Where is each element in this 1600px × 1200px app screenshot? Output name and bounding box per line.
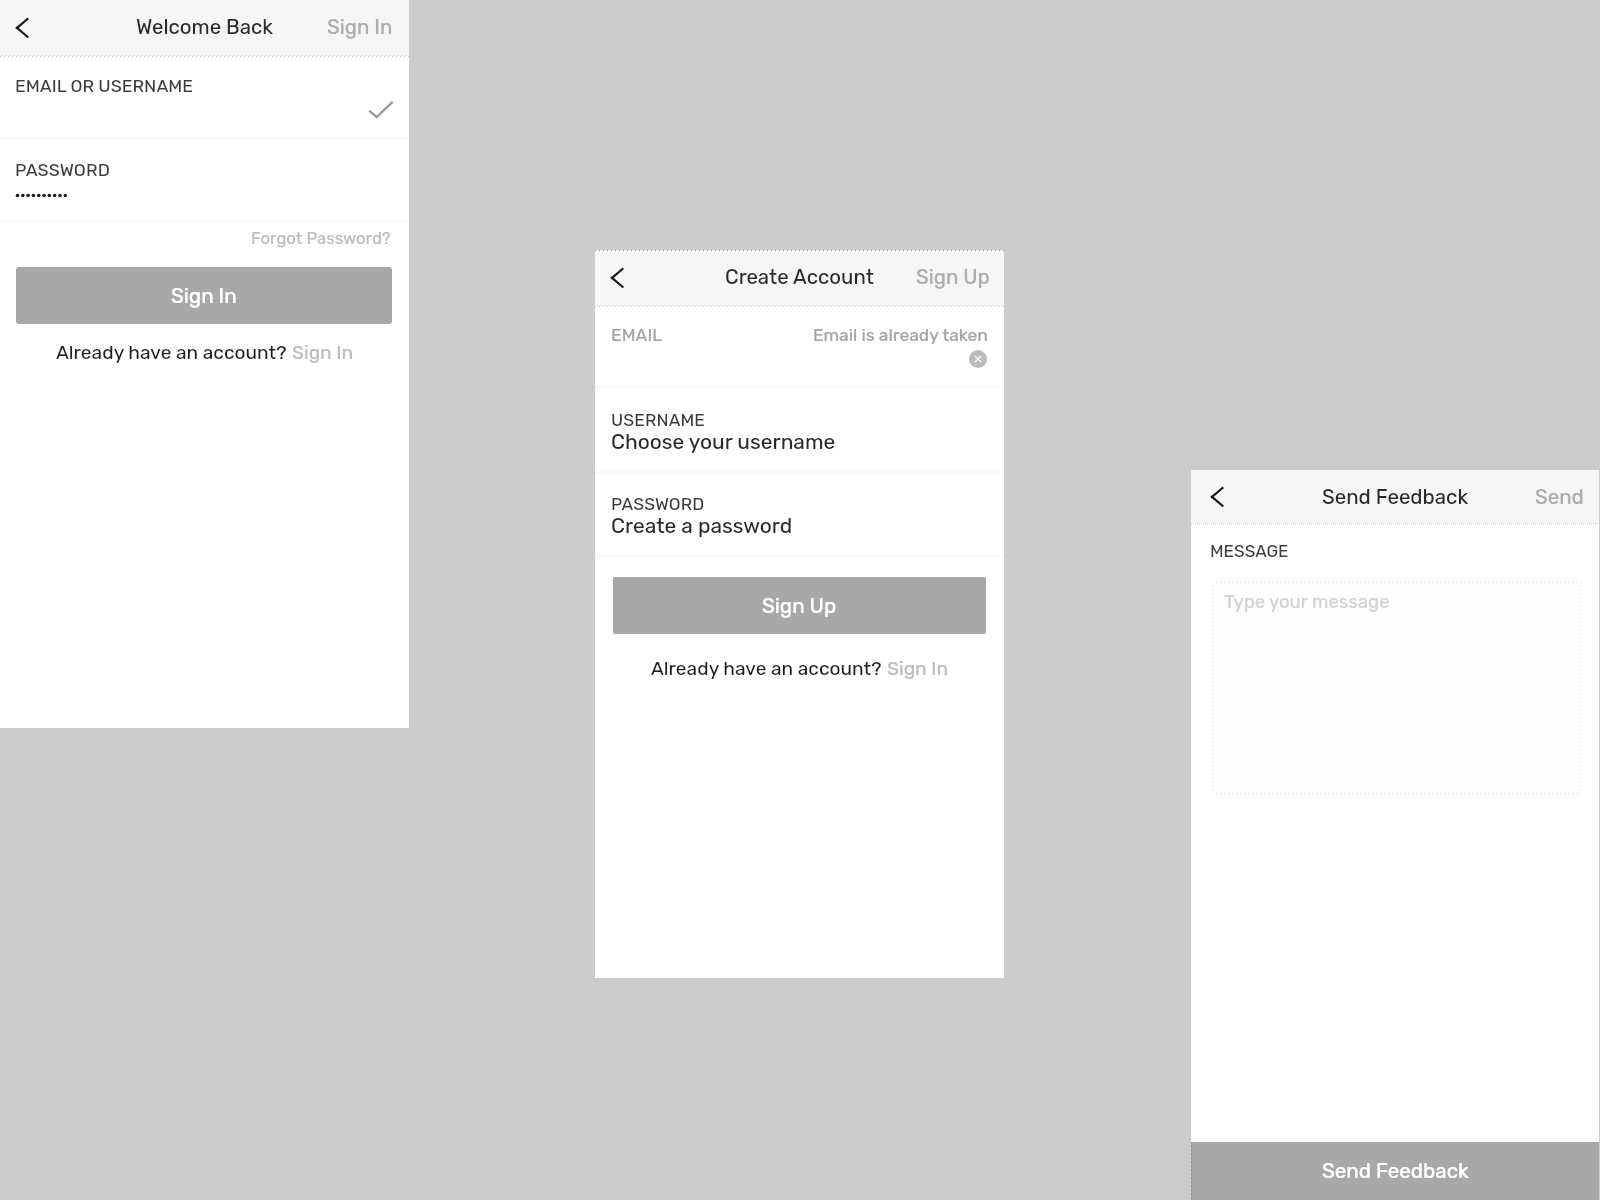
- staticText: Sign Up: [916, 265, 990, 289]
- button[interactable]: Sign Up: [613, 577, 986, 634]
- staticText: Send Feedback: [1322, 1159, 1469, 1183]
- button[interactable]: Sign In: [16, 267, 392, 324]
- button[interactable]: [595, 388, 1004, 471]
- staticText: PASSWORD: [611, 494, 705, 515]
- staticText: Forgot Password?: [251, 229, 391, 249]
- staticText: Welcome Back: [136, 15, 274, 39]
- staticText: EMAIL OR USERNAME: [15, 76, 194, 97]
- staticText: Create a password: [611, 514, 793, 539]
- staticText: Choose your username: [611, 430, 836, 455]
- staticText: Already have an account?: [651, 657, 887, 680]
- button[interactable]: Back: [1204, 480, 1231, 514]
- button[interactable]: [0, 139, 409, 221]
- button[interactable]: Sign Up: [916, 265, 990, 289]
- button[interactable]: Send: [1535, 485, 1584, 509]
- button[interactable]: Forgot Password?: [251, 229, 391, 249]
- staticText: Send Feedback: [1322, 485, 1469, 509]
- staticText: Type your message: [1224, 591, 1390, 613]
- button[interactable]: Clear email: [969, 350, 987, 368]
- button[interactable]: Send Feedback: [1322, 485, 1469, 509]
- staticText: USERNAME: [611, 410, 706, 431]
- button[interactable]: Type your message: [1212, 582, 1582, 794]
- staticText: Create Account: [725, 265, 874, 289]
- button[interactable]: Create Account: [725, 265, 874, 289]
- staticText: Sign In: [887, 657, 949, 680]
- staticText: Send: [1535, 485, 1584, 509]
- staticText: Sign In: [171, 284, 237, 308]
- staticText: Email is already taken: [813, 325, 988, 346]
- button[interactable]: [0, 57, 409, 138]
- staticText: MESSAGE: [1210, 541, 1289, 561]
- button[interactable]: [595, 306, 1004, 386]
- staticText: Sign In: [327, 15, 393, 39]
- staticText: Already have an account?: [56, 341, 292, 364]
- button[interactable]: Send Feedback: [1191, 1142, 1599, 1200]
- button[interactable]: Back: [9, 11, 36, 45]
- button[interactable]: Sign In: [887, 657, 949, 680]
- staticText: EMAIL: [611, 325, 663, 346]
- button[interactable]: Sign In: [292, 341, 354, 364]
- button[interactable]: Back: [604, 261, 631, 295]
- button[interactable]: [595, 473, 1004, 556]
- button[interactable]: Sign In: [327, 15, 393, 39]
- button[interactable]: Welcome Back: [136, 15, 274, 39]
- staticText: Sign In: [292, 341, 354, 364]
- staticText: Sign Up: [762, 594, 837, 618]
- staticText: PASSWORD: [15, 160, 110, 181]
